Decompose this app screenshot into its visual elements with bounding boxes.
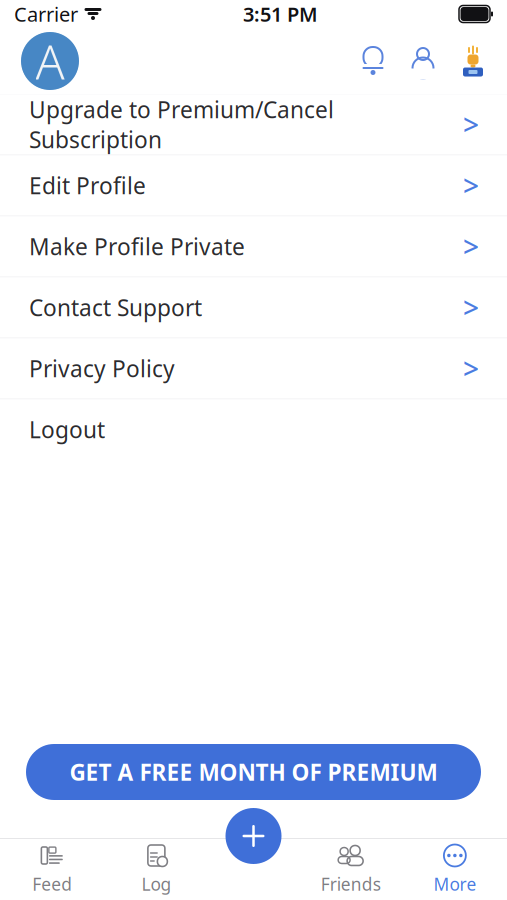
- staticText: Make Profile Private: [29, 231, 245, 261]
- staticText: 3:51 PM: [243, 1, 318, 27]
- staticText: A: [35, 29, 64, 93]
- button[interactable]: GET A FREE MONTH OF PREMIUM: [26, 744, 481, 800]
- staticText: More: [433, 872, 476, 895]
- button[interactable]: Feed: [0, 839, 104, 900]
- button[interactable]: Privacy Policy: [0, 338, 507, 398]
- staticText: Carrier: [14, 1, 78, 27]
- staticText: Feed: [32, 872, 72, 895]
- staticText: >: [463, 228, 479, 265]
- button[interactable]: Home: [21, 32, 79, 90]
- staticText: Log: [141, 872, 171, 895]
- staticText: >: [463, 289, 479, 326]
- button[interactable]: Friends: [298, 839, 403, 900]
- button[interactable]: Achievements: [460, 45, 486, 77]
- staticText: >: [463, 350, 479, 387]
- button[interactable]: Make Profile Private: [0, 216, 507, 276]
- staticText: >: [463, 106, 479, 143]
- button[interactable]: Notifications: [360, 46, 386, 76]
- staticText: Privacy Policy: [29, 353, 175, 383]
- button[interactable]: More: [403, 839, 507, 900]
- button[interactable]: Contact Support: [0, 277, 507, 337]
- button[interactable]: Profile: [410, 46, 436, 76]
- button[interactable]: Logout: [0, 399, 507, 459]
- button[interactable]: Add: [223, 806, 283, 866]
- button[interactable]: Upgrade to Premium/Cancel Subscription: [0, 94, 507, 154]
- button[interactable]: Edit Profile: [0, 155, 507, 215]
- staticText: Friends: [321, 872, 381, 895]
- staticText: Edit Profile: [29, 170, 146, 200]
- staticText: Upgrade to Premium/Cancel Subscription: [29, 94, 334, 155]
- staticText: >: [463, 167, 479, 204]
- button[interactable]: Log: [104, 839, 208, 900]
- staticText: GET A FREE MONTH OF PREMIUM: [69, 757, 437, 787]
- staticText: Logout: [29, 414, 105, 444]
- staticText: Contact Support: [29, 292, 202, 322]
